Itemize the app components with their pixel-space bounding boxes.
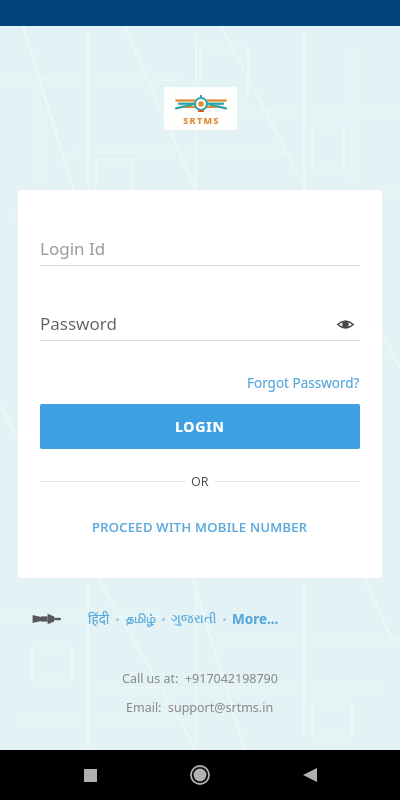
staticText: SRTMS (183, 114, 220, 124)
staticText: Login Id (40, 237, 106, 260)
button[interactable]: LOGIN (40, 404, 360, 449)
button[interactable]: தமிழ் (125, 612, 156, 626)
button[interactable]: PROCEED WITH MOBILE NUMBER (40, 515, 360, 539)
staticText: Password (40, 312, 117, 335)
staticText: Forgot Password? (247, 374, 360, 392)
button[interactable]: Forgot Password? (247, 374, 360, 392)
staticText: PROCEED WITH MOBILE NUMBER (92, 518, 308, 536)
staticText: Email: support@srtms.in (126, 699, 274, 716)
staticText: ગુજરાતી (171, 612, 217, 626)
staticText: LOGIN (175, 417, 225, 436)
button[interactable]: ગુજરાતી (171, 612, 217, 626)
button[interactable]: Password (40, 307, 360, 340)
staticText: More... (232, 610, 279, 628)
button[interactable]: More... (232, 610, 279, 628)
button[interactable]: Back (290, 755, 330, 795)
staticText: தமிழ் (125, 612, 156, 626)
button[interactable]: Recent apps (70, 755, 110, 795)
staticText: Call us at: +917042198790 (122, 670, 278, 687)
staticText: हिंदी (88, 610, 110, 628)
other: Announcements (32, 609, 62, 629)
button[interactable]: Login Id (40, 232, 360, 265)
button[interactable]: Show password (330, 309, 360, 339)
staticText: OR (191, 473, 209, 490)
button[interactable]: हिंदी (88, 610, 110, 628)
button[interactable]: Home (180, 755, 220, 795)
